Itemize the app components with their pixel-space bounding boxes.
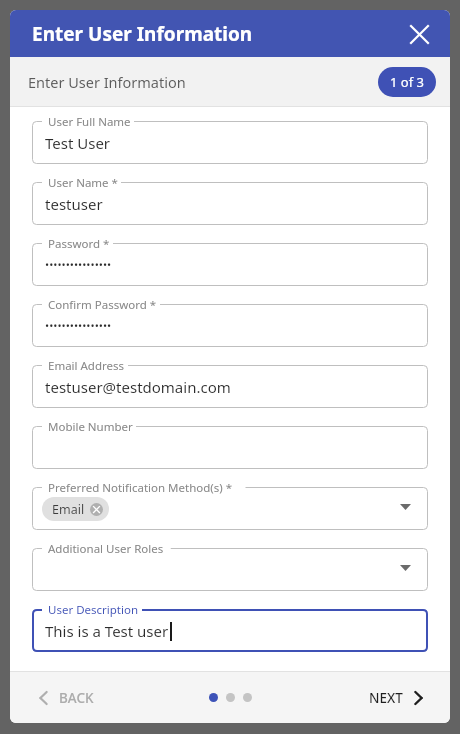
staticText: testuser@testdomain.com [45,377,231,397]
button[interactable]: User Description [32,609,428,652]
staticText: User Full Name [48,114,131,130]
button[interactable]: Preferred Notification Method(s) * [32,487,428,530]
staticText: User Description [48,602,139,618]
staticText: 1 of 3 [390,73,424,91]
button[interactable]: Email [42,497,109,521]
staticText: Preferred Notification Method(s) * [48,480,233,496]
button[interactable]: Mobile Number [32,426,428,469]
staticText: NEXT [369,689,403,707]
button[interactable]: Close [402,17,436,51]
staticText: Confirm Password * [48,297,157,313]
staticText: User Name * [48,175,118,191]
staticText: This is a Test user [45,621,169,641]
staticText: Test User [45,133,111,153]
staticText: Password * [48,236,110,252]
staticText: Email [52,501,85,518]
button[interactable]: BACK [32,683,100,713]
staticText: Additional User Roles [48,541,164,557]
button[interactable]: NEXT [363,683,430,713]
staticText: Email Address [48,358,125,374]
staticText: Enter User Information [28,72,186,92]
staticText: BACK [59,689,94,707]
button[interactable]: Open Preferred Notification Method(s) * … [394,498,416,520]
staticText: testuser [45,194,103,214]
button[interactable]: 1 of 3 [378,67,436,97]
staticText: Mobile Number [48,419,133,435]
staticText: Enter User Information [32,21,253,47]
staticText: •••••••••••••••• [45,257,112,272]
button[interactable]: Email Address [32,365,428,408]
button[interactable]: Additional User Roles [32,548,428,591]
button[interactable]: User Full Name [32,121,428,164]
button[interactable]: Password * [32,243,428,286]
staticText: •••••••••••••••• [45,318,112,333]
button[interactable]: Open Additional User Roles dropdown [394,559,416,581]
button[interactable]: Confirm Password * [32,304,428,347]
button[interactable]: User Name * [32,182,428,225]
